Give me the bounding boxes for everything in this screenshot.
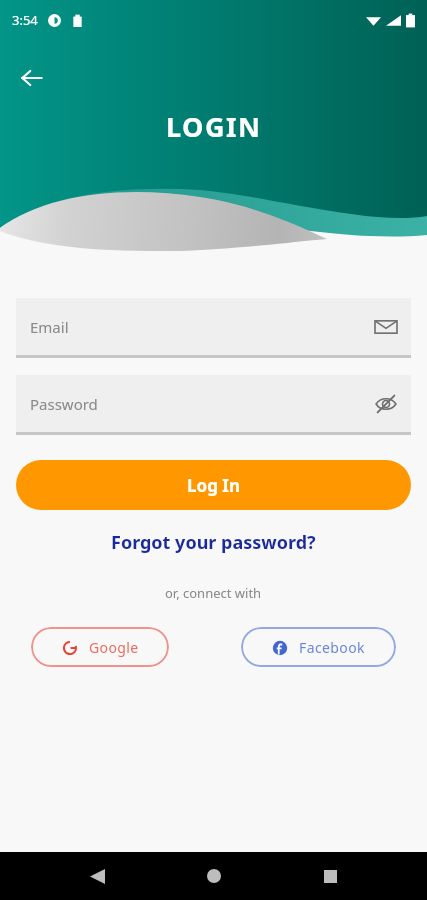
button[interactable]: Facebook bbox=[241, 627, 396, 667]
staticText: LOGIN bbox=[166, 108, 262, 145]
staticText: 3:54 bbox=[12, 11, 38, 29]
staticText: Log In bbox=[187, 474, 240, 497]
button[interactable]: Google bbox=[31, 627, 169, 667]
button[interactable]: Email bbox=[16, 298, 411, 355]
button[interactable]: Back bbox=[10, 56, 54, 100]
button[interactable]: Forgot your password? bbox=[16, 530, 411, 555]
button[interactable]: Log In bbox=[16, 460, 411, 510]
staticText: Google bbox=[89, 638, 139, 657]
button[interactable]: Password bbox=[16, 375, 411, 432]
button[interactable]: Recents bbox=[310, 856, 350, 896]
staticText: Password bbox=[30, 394, 98, 414]
staticText: Email bbox=[30, 317, 69, 337]
staticText: or, connect with bbox=[165, 584, 262, 602]
staticText: Facebook bbox=[299, 638, 365, 657]
staticText: Forgot your password? bbox=[111, 530, 316, 555]
button[interactable]: Home bbox=[194, 856, 234, 896]
button[interactable]: Back bbox=[77, 856, 117, 896]
